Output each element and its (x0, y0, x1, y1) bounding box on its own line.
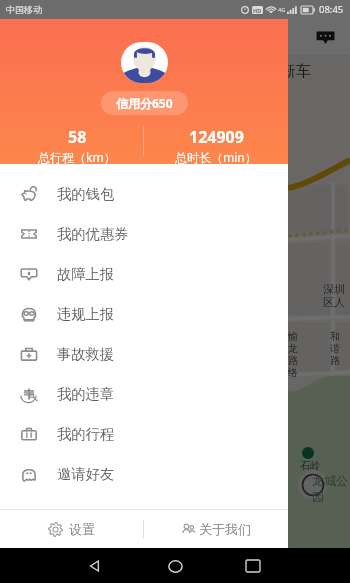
button[interactable]: Home (159, 550, 191, 582)
button[interactable]: 信用分650 (101, 91, 188, 115)
staticText: 新车 (281, 62, 311, 81)
staticText: 总时长（min） (175, 149, 257, 164)
staticText: 事故救援 (57, 345, 115, 363)
button[interactable]: 我的行程 (0, 414, 288, 454)
staticText: 故障上报 (57, 265, 115, 283)
staticText: HD (253, 7, 262, 14)
staticText: 愉 龙 路 络 (288, 330, 298, 379)
staticText: 信用分650 (116, 95, 173, 111)
button[interactable]: Profile avatar (121, 42, 168, 83)
button[interactable]: Back (79, 550, 111, 582)
staticText: 违规上报 (57, 305, 115, 323)
staticText: 总行程（km） (38, 149, 116, 164)
button[interactable]: 邀请好友 (0, 454, 288, 494)
button[interactable]: 故障上报 (0, 254, 288, 294)
staticText: 邀请好友 (57, 465, 115, 483)
button[interactable]: 我的优惠券 (0, 214, 288, 254)
button[interactable]: 设置 (0, 510, 143, 548)
staticText: 石岭 (300, 459, 320, 472)
staticText: 设置 (69, 521, 95, 537)
staticText: 我的行程 (57, 425, 115, 443)
button[interactable]: Recents (237, 550, 269, 582)
staticText: 我的违章 (57, 385, 115, 403)
staticText: 08:45 (319, 3, 344, 16)
staticText: 龙城公园 (312, 473, 350, 505)
staticText: 关于我们 (199, 521, 251, 537)
staticText: 58 (68, 126, 87, 148)
button[interactable]: 违规上报 (0, 294, 288, 334)
staticText: 我的优惠券 (57, 225, 129, 243)
staticText: 和 谐 路 (330, 330, 340, 367)
button[interactable]: 事故救援 (0, 334, 288, 374)
staticText: 124909 (189, 126, 244, 148)
button[interactable]: 关于我们 (144, 510, 288, 548)
staticText: 中国移动 (6, 4, 42, 15)
button[interactable]: Messages (316, 28, 335, 47)
button[interactable]: 我的钱包 (0, 174, 288, 214)
staticText: 4G (278, 6, 286, 13)
staticText: 深圳 区人 (323, 282, 345, 309)
staticText: 我的钱包 (57, 185, 115, 203)
button[interactable]: 我的违章 (0, 374, 288, 414)
